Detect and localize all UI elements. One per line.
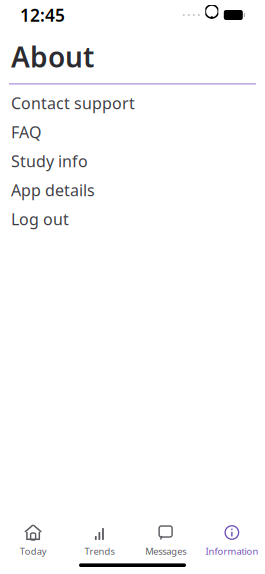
button[interactable]: Information [199,522,265,559]
staticText: Log out [11,208,69,230]
button[interactable]: Study info [0,147,265,176]
staticText: FAQ [11,121,41,143]
button[interactable]: Log out [0,205,265,234]
staticText: Today [20,545,47,557]
button[interactable]: Today [0,522,66,559]
staticText: Messages [145,545,186,557]
button[interactable]: FAQ [0,118,265,147]
staticText: 12:45 [20,3,65,26]
staticText: Contact support [11,92,135,114]
staticText: Study info [11,150,88,172]
button[interactable]: Trends [66,522,132,559]
staticText: Trends [84,545,114,557]
button[interactable]: App details [0,176,265,205]
button[interactable]: Contact support [0,89,265,118]
staticText: App details [11,179,95,201]
staticText: Information [205,545,258,557]
button[interactable]: Messages [132,522,199,559]
staticText: About [11,38,94,75]
